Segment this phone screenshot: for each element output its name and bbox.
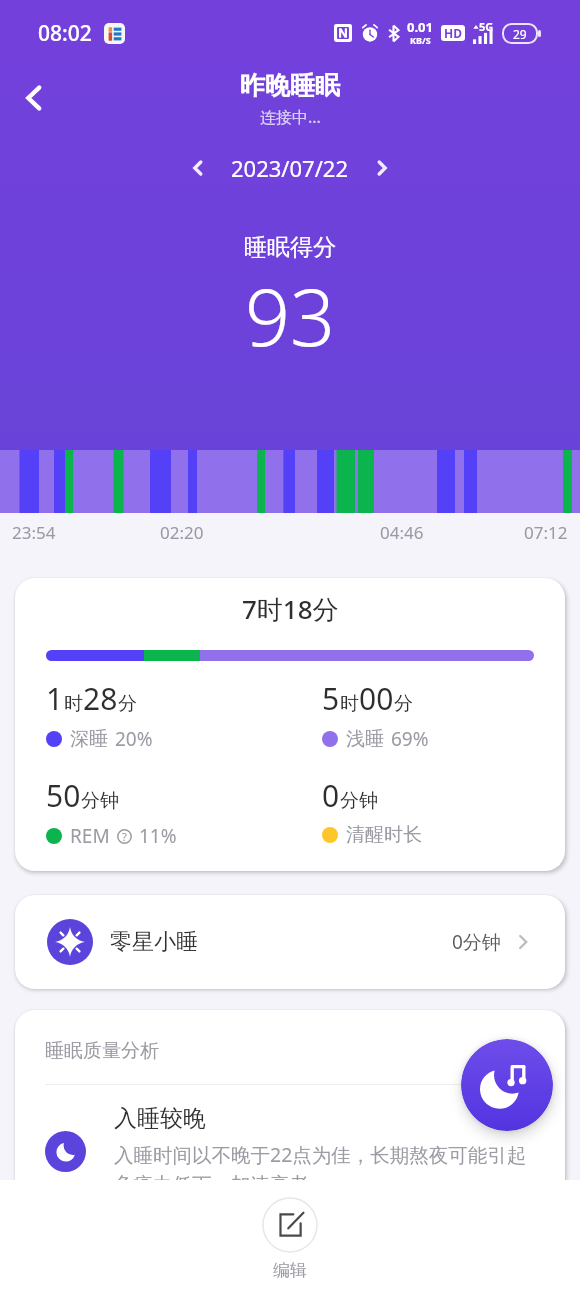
- button[interactable]: 零星小睡: [15, 895, 565, 989]
- staticText: KB/S: [410, 34, 431, 46]
- staticText: 零星小睡: [110, 928, 198, 956]
- staticText: 分: [394, 692, 413, 716]
- staticText: 时: [64, 692, 83, 716]
- staticText: 时: [340, 692, 359, 716]
- staticText: 11%: [139, 823, 177, 849]
- staticText: 04:46: [380, 521, 424, 544]
- staticText: 02:20: [160, 521, 204, 544]
- staticText: 5G: [479, 19, 494, 34]
- staticText: 连接中...: [260, 106, 321, 128]
- staticText: 07:12: [524, 521, 568, 544]
- staticText: 编辑: [273, 1260, 307, 1281]
- staticText: 00: [359, 678, 394, 719]
- staticText: 50: [46, 775, 81, 816]
- button[interactable]: Next day: [364, 150, 400, 186]
- button[interactable]: Sleep sounds: [461, 1039, 553, 1131]
- staticText: 0: [322, 775, 340, 816]
- staticText: 2023/07/22: [231, 153, 349, 183]
- staticText: ?: [122, 829, 127, 844]
- staticText: 深睡: [70, 727, 108, 751]
- staticText: 1: [46, 678, 64, 719]
- staticText: 分钟: [81, 789, 119, 813]
- staticText: 入睡时间以不晚于22点为佳，长期熬夜可能引起免疫力低下，加速衰老: [114, 1141, 535, 1197]
- staticText: 清醒时长: [346, 823, 422, 847]
- staticText: 0分钟: [452, 929, 501, 955]
- staticText: 分钟: [340, 789, 378, 813]
- staticText: 分: [118, 692, 137, 716]
- staticText: 睡眠质量分析: [45, 1039, 159, 1063]
- button[interactable]: Back: [5, 69, 63, 127]
- staticText: 0.01: [407, 18, 433, 36]
- staticText: 5: [322, 678, 340, 719]
- staticText: 7时18分: [242, 591, 339, 627]
- staticText: 昨晚睡眠: [240, 70, 340, 101]
- staticText: REM: [70, 823, 110, 849]
- staticText: 23:54: [12, 521, 56, 544]
- staticText: 29: [513, 26, 527, 42]
- staticText: 08:02: [38, 19, 92, 48]
- staticText: 69%: [391, 726, 429, 752]
- button[interactable]: Previous day: [180, 150, 216, 186]
- staticText: 28: [83, 678, 118, 719]
- staticText: 入睡较晚: [114, 1104, 206, 1133]
- staticText: HD: [444, 25, 462, 41]
- staticText: 20%: [115, 726, 153, 752]
- staticText: 93: [245, 262, 336, 370]
- button[interactable]: 编辑: [262, 1197, 318, 1281]
- staticText: 浅睡: [346, 727, 384, 751]
- staticText: 睡眠得分: [244, 233, 336, 262]
